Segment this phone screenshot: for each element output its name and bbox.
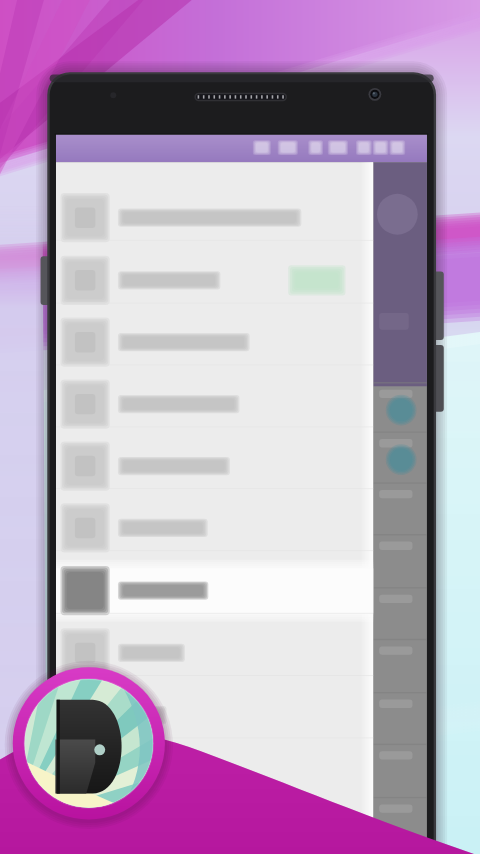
button[interactable]: App icon [0,0,480,854]
